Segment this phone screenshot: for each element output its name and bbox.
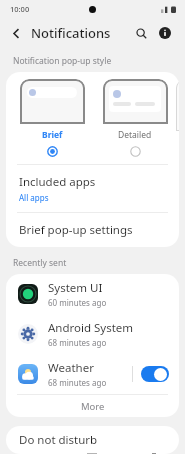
staticText: All apps xyxy=(19,192,49,203)
button[interactable]: Brief xyxy=(13,72,91,157)
staticText: Do not disturb xyxy=(19,432,98,448)
staticText: Android System xyxy=(48,320,134,336)
staticText: Detailed xyxy=(118,129,152,141)
staticText: Included apps xyxy=(19,174,96,190)
staticText: More xyxy=(81,400,105,413)
staticText: 60 minutes ago xyxy=(48,297,107,308)
staticText: Notifications xyxy=(31,24,111,42)
button[interactable]: Weather notifications on xyxy=(141,366,169,382)
staticText: System UI xyxy=(48,280,103,296)
staticText: 68 minutes ago xyxy=(48,377,107,388)
staticText: Recently sent xyxy=(13,257,67,269)
button[interactable]: Weather xyxy=(6,354,179,394)
button[interactable]: Search xyxy=(129,21,153,45)
button[interactable]: Back xyxy=(5,22,27,44)
staticText: 10:00 xyxy=(10,4,30,14)
button[interactable]: Do not disturb xyxy=(6,426,179,454)
staticText: Weather xyxy=(48,360,94,376)
button[interactable]: Included apps xyxy=(6,165,179,212)
staticText: Brief xyxy=(42,129,63,141)
staticText: 68 minutes ago xyxy=(48,337,107,348)
staticText: Brief pop-up settings xyxy=(19,222,133,238)
button[interactable]: Detailed xyxy=(96,72,174,157)
button[interactable]: Brief pop-up settings xyxy=(6,213,179,247)
button[interactable]: Android System xyxy=(6,314,179,354)
button[interactable]: More information xyxy=(153,21,177,45)
button[interactable]: System UI xyxy=(6,274,179,314)
staticText: Notification pop-up style xyxy=(13,55,112,67)
button[interactable]: More xyxy=(6,395,179,417)
